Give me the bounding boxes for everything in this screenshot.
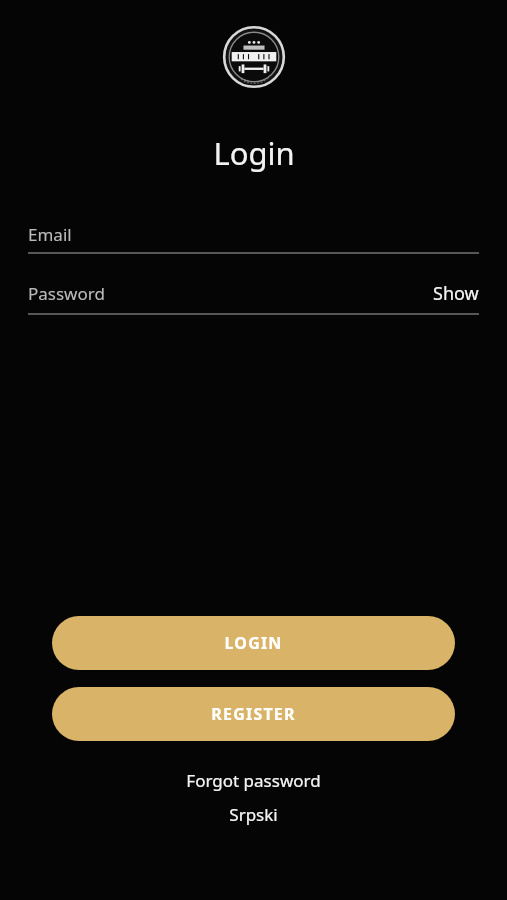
button[interactable]: Show (423, 273, 479, 313)
button[interactable]: Password (28, 273, 423, 313)
button[interactable]: LOGIN (52, 616, 455, 670)
button[interactable]: Srpski (217, 801, 290, 828)
staticText: REGISTER (211, 703, 296, 725)
button[interactable]: REGISTER (52, 687, 455, 741)
staticText: Forgot password (186, 769, 321, 792)
staticText: LOGIN (224, 632, 283, 654)
staticText: Password (28, 282, 105, 305)
staticText: Login (213, 132, 295, 174)
button[interactable]: Email (28, 216, 479, 254)
other: Pro Gym logo (223, 26, 285, 88)
button[interactable]: Forgot password (174, 767, 333, 794)
staticText: Show (433, 281, 479, 306)
staticText: Srpski (229, 803, 278, 826)
staticText: Email (28, 223, 72, 246)
